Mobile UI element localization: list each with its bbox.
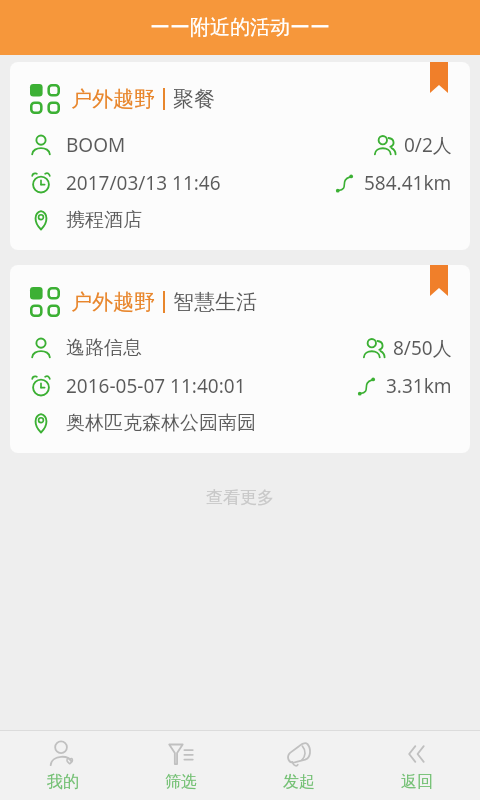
staticText: BOOM	[66, 132, 126, 158]
button[interactable]: 筛选	[126, 734, 236, 798]
staticText: 3.31km	[386, 373, 452, 399]
staticText: ーー附近的活动ーー	[150, 15, 330, 40]
button[interactable]: 查看更多	[0, 479, 480, 516]
staticText: 发起	[283, 772, 315, 792]
staticText: 聚餐	[173, 86, 215, 112]
staticText: 2017/03/13 11:46	[66, 170, 221, 196]
button[interactable]: 我的	[8, 734, 118, 798]
staticText: 奥林匹克森林公园南园	[66, 411, 256, 435]
staticText: 携程酒店	[66, 208, 142, 232]
staticText: 8/50人	[393, 335, 452, 361]
button[interactable]: 户外越野	[10, 62, 470, 250]
staticText: 筛选	[165, 772, 197, 792]
staticText: 我的	[47, 772, 79, 792]
staticText: 2016-05-07 11:40:01	[66, 373, 246, 399]
staticText: 智慧生活	[173, 289, 257, 315]
staticText: 查看更多	[206, 487, 274, 508]
button[interactable]: 户外越野	[10, 265, 470, 453]
button[interactable]: 发起	[244, 734, 354, 798]
button[interactable]: 返回	[362, 734, 472, 798]
staticText: 逸路信息	[66, 336, 142, 360]
staticText: 0/2人	[404, 132, 452, 158]
staticText: 户外越野	[71, 289, 155, 315]
staticText: 返回	[401, 772, 433, 792]
staticText: 584.41km	[364, 170, 452, 196]
staticText: 户外越野	[71, 86, 155, 112]
